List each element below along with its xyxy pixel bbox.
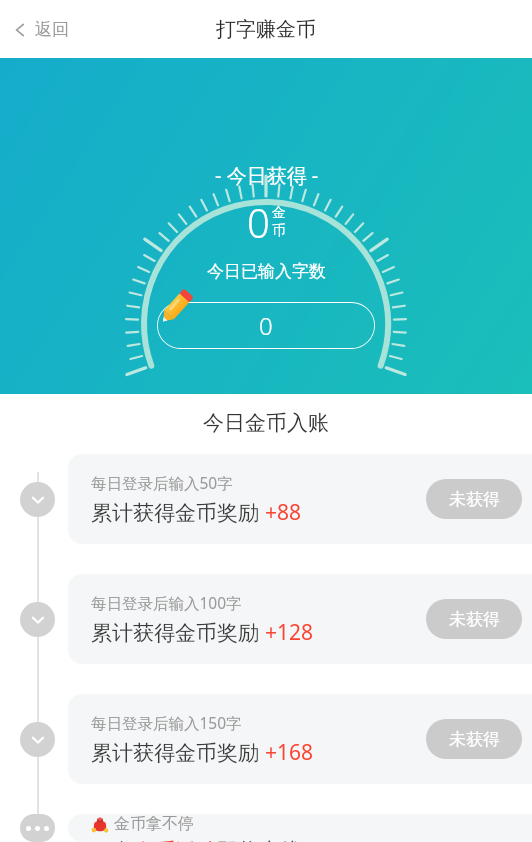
button[interactable]: 未完成 <box>20 602 55 637</box>
staticText: 累计获得金币奖励 <box>91 498 265 527</box>
staticText: 未获得 <box>449 489 500 510</box>
staticText: 即将上线 <box>217 838 301 842</box>
staticText: +128 <box>265 618 314 647</box>
button[interactable]: 0 <box>157 302 375 349</box>
staticText: 返回 <box>35 19 69 40</box>
staticText: 金币活动 <box>133 838 217 842</box>
staticText: 未获得 <box>449 729 500 750</box>
staticText: +168 <box>265 738 314 767</box>
staticText: +88 <box>265 498 302 527</box>
button[interactable]: 未完成 <box>20 482 55 517</box>
button[interactable]: 返回 <box>0 13 83 46</box>
button[interactable]: 更多 <box>20 814 55 842</box>
button[interactable]: 未获得 <box>426 719 522 759</box>
staticText: 金 <box>272 204 286 222</box>
button[interactable]: 每日登录后输入50字 <box>68 454 532 544</box>
button[interactable]: 每日登录后输入100字 <box>68 574 532 664</box>
staticText: 打字赚金币 <box>216 17 316 42</box>
staticText: 币 <box>272 222 286 240</box>
staticText: 金币拿不停 <box>114 814 194 834</box>
staticText: 累计获得金币奖励 <box>91 618 265 647</box>
staticText: 每日登录后输入150字 <box>91 712 242 733</box>
button[interactable]: 未获得 <box>426 479 522 519</box>
button[interactable]: 金币拿不停 <box>68 814 532 842</box>
staticText: 0 <box>247 195 270 249</box>
staticText: 0 <box>259 309 273 342</box>
staticText: 每日登录后输入100字 <box>91 592 242 613</box>
staticText: 今日已输入字数 <box>207 261 326 282</box>
button[interactable]: 未获得 <box>426 599 522 639</box>
staticText: 今日金币入账 <box>0 410 532 436</box>
button[interactable]: 未完成 <box>20 722 55 757</box>
staticText: 未获得 <box>449 609 500 630</box>
button[interactable]: 每日登录后输入150字 <box>68 694 532 784</box>
staticText: 累计获得金币奖励 <box>91 738 265 767</box>
staticText: 更多 <box>91 838 133 842</box>
staticText: 每日登录后输入50字 <box>91 472 233 493</box>
staticText: - 今日获得 - <box>215 162 319 189</box>
